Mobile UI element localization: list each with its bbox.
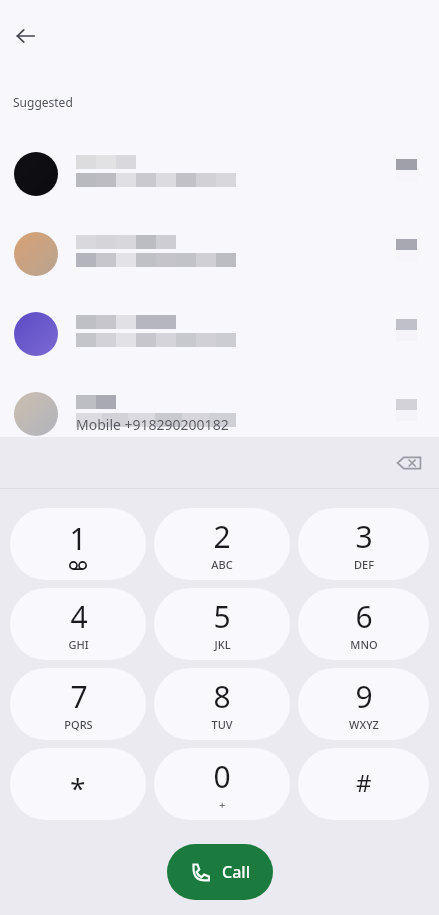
- staticText: 1: [69, 518, 87, 559]
- staticText: 4: [70, 596, 88, 637]
- staticText: Mobile +918290200182: [76, 415, 229, 434]
- button[interactable]: 6: [298, 588, 429, 660]
- staticText: 2: [213, 516, 231, 557]
- staticText: TUV: [211, 717, 233, 732]
- button[interactable]: 7: [10, 668, 146, 740]
- button[interactable]: 1: [10, 508, 146, 580]
- staticText: 0: [213, 756, 231, 797]
- staticText: Call: [222, 861, 250, 883]
- staticText: 6: [355, 596, 373, 637]
- staticText: JKL: [214, 637, 231, 652]
- button[interactable]: Back: [12, 22, 40, 50]
- button[interactable]: [0, 294, 439, 374]
- staticText: PQRS: [64, 717, 93, 732]
- staticText: WXYZ: [349, 717, 379, 732]
- button[interactable]: 9: [298, 668, 429, 740]
- button[interactable]: [0, 214, 439, 294]
- staticText: 3: [355, 516, 373, 557]
- button[interactable]: *: [10, 748, 146, 820]
- button[interactable]: #: [298, 748, 429, 820]
- button[interactable]: 4: [10, 588, 146, 660]
- staticText: 7: [70, 676, 88, 717]
- staticText: DEF: [354, 557, 374, 572]
- staticText: +: [219, 797, 226, 812]
- button[interactable]: 5: [154, 588, 290, 660]
- staticText: GHI: [68, 637, 89, 652]
- staticText: Suggested: [13, 94, 73, 110]
- button[interactable]: [0, 134, 439, 214]
- button[interactable]: Call: [167, 844, 273, 900]
- staticText: 5: [213, 596, 231, 637]
- staticText: 9: [355, 676, 373, 717]
- staticText: MNO: [350, 637, 378, 652]
- button[interactable]: 0: [154, 748, 290, 820]
- staticText: *: [70, 769, 86, 807]
- staticText: #: [356, 766, 372, 799]
- button[interactable]: 2: [154, 508, 290, 580]
- button[interactable]: Backspace: [389, 443, 429, 483]
- button[interactable]: 8: [154, 668, 290, 740]
- staticText: ABC: [211, 557, 233, 572]
- button[interactable]: [0, 374, 439, 454]
- button[interactable]: 3: [298, 508, 429, 580]
- staticText: 8: [213, 676, 231, 717]
